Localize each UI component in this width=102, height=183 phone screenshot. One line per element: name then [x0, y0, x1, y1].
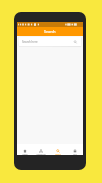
- button[interactable]: Search: [49, 144, 66, 155]
- other: Search: [73, 40, 77, 44]
- staticText: Home: [22, 153, 28, 155]
- button[interactable]: Home: [17, 144, 33, 155]
- button[interactable]: Cart: [66, 144, 83, 155]
- staticText: Categories: [36, 153, 46, 155]
- staticText: Cart: [73, 153, 77, 155]
- staticText: Search here: [22, 40, 38, 44]
- staticText: Search: [44, 29, 56, 34]
- staticText: Search: [55, 153, 61, 155]
- button[interactable]: Categories: [33, 144, 49, 155]
- button[interactable]: Search here: [19, 37, 81, 46]
